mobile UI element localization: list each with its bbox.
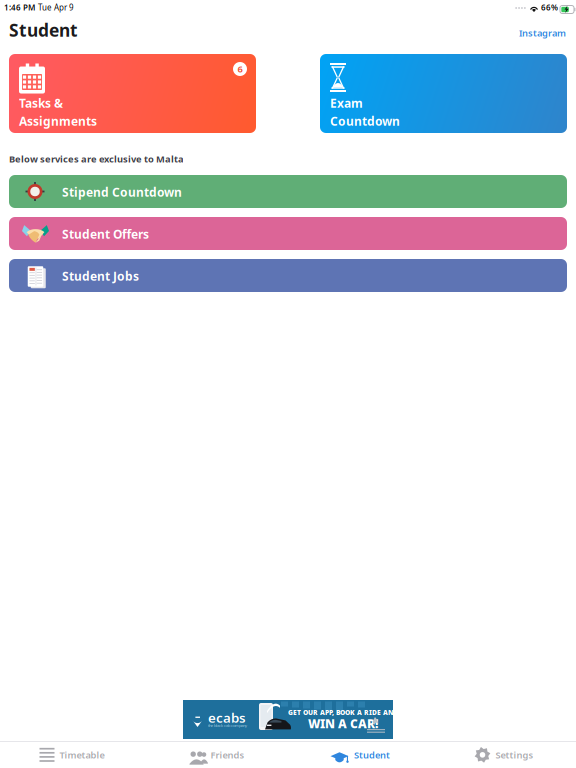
button[interactable]: Friends	[144, 742, 288, 768]
staticText: Countdown	[330, 113, 400, 129]
staticText: Student Offers	[62, 226, 149, 242]
staticText: Friends	[210, 749, 244, 761]
staticText: Student	[9, 18, 78, 41]
staticText: Stipend Countdown	[62, 184, 182, 200]
button[interactable]: Exam	[320, 54, 567, 133]
staticText: ecabs	[208, 709, 246, 726]
staticText: Tue Apr 9	[38, 2, 74, 13]
staticText: 1:46 PM	[4, 2, 35, 13]
staticText: the black cab company	[208, 723, 247, 728]
button[interactable]: Student Jobs	[9, 259, 567, 292]
staticText: Student Jobs	[62, 268, 139, 284]
staticText: Assignments	[19, 113, 97, 129]
staticText: Below services are exclusive to Malta	[9, 153, 184, 165]
staticText: Exam	[330, 95, 363, 111]
staticText: Tasks &	[19, 95, 63, 111]
staticText: Timetable	[59, 749, 104, 761]
staticText: 6	[237, 63, 242, 75]
button[interactable]: Student Offers	[9, 217, 567, 250]
button[interactable]: Settings	[432, 742, 576, 768]
staticText: Student	[354, 749, 390, 761]
staticText: Instagram	[519, 27, 566, 39]
staticText: GET OUR APP, BOOK A RIDE AND	[288, 708, 399, 717]
button[interactable]: Stipend Countdown	[9, 175, 567, 208]
staticText: Settings	[495, 749, 533, 761]
button[interactable]: ecabs	[183, 700, 393, 739]
button[interactable]: Tasks &	[9, 54, 256, 133]
staticText: 66%	[541, 2, 558, 13]
button[interactable]: Timetable	[0, 742, 144, 768]
button[interactable]: Student	[288, 742, 432, 768]
staticText: WIN A CAR!	[308, 715, 378, 731]
button[interactable]: Instagram	[517, 24, 568, 42]
